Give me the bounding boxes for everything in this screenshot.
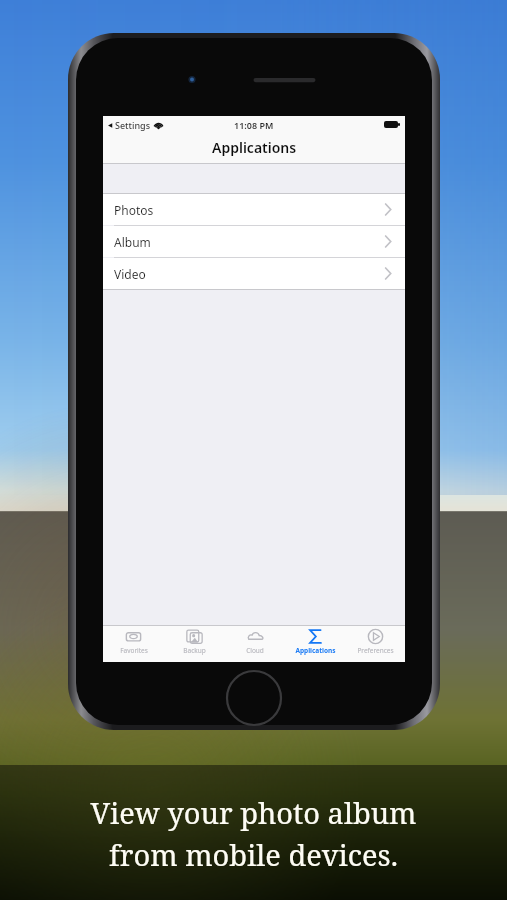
staticText: Photos <box>114 202 154 218</box>
other: Applications <box>307 628 324 645</box>
staticText: Applications <box>212 138 297 157</box>
staticText: Album <box>114 234 151 250</box>
button[interactable]: Album <box>103 226 405 257</box>
other: Cloud <box>247 628 264 645</box>
staticText: Backup <box>183 646 206 655</box>
button[interactable]: Favorites <box>103 628 164 662</box>
other: Preferences <box>367 628 384 645</box>
staticText: Preferences <box>357 646 394 655</box>
button[interactable]: Cloud <box>225 628 285 662</box>
button[interactable]: Applications <box>285 628 345 662</box>
staticText: Cloud <box>246 646 264 655</box>
staticText: Favorites <box>120 646 148 655</box>
button[interactable]: Photos <box>103 194 405 225</box>
staticText: Settings <box>115 119 151 131</box>
staticText: from mobile devices. <box>109 835 398 874</box>
other: Backup <box>186 628 203 645</box>
staticText: Video <box>114 266 146 282</box>
staticText: Applications <box>295 646 336 655</box>
staticText: 11:08 PM <box>234 119 274 131</box>
staticText: View your photo album <box>90 793 417 832</box>
button[interactable]: Video <box>103 258 405 289</box>
other: Favorites <box>125 628 142 645</box>
button[interactable]: Preferences <box>345 628 405 662</box>
button[interactable]: Backup <box>164 628 225 662</box>
